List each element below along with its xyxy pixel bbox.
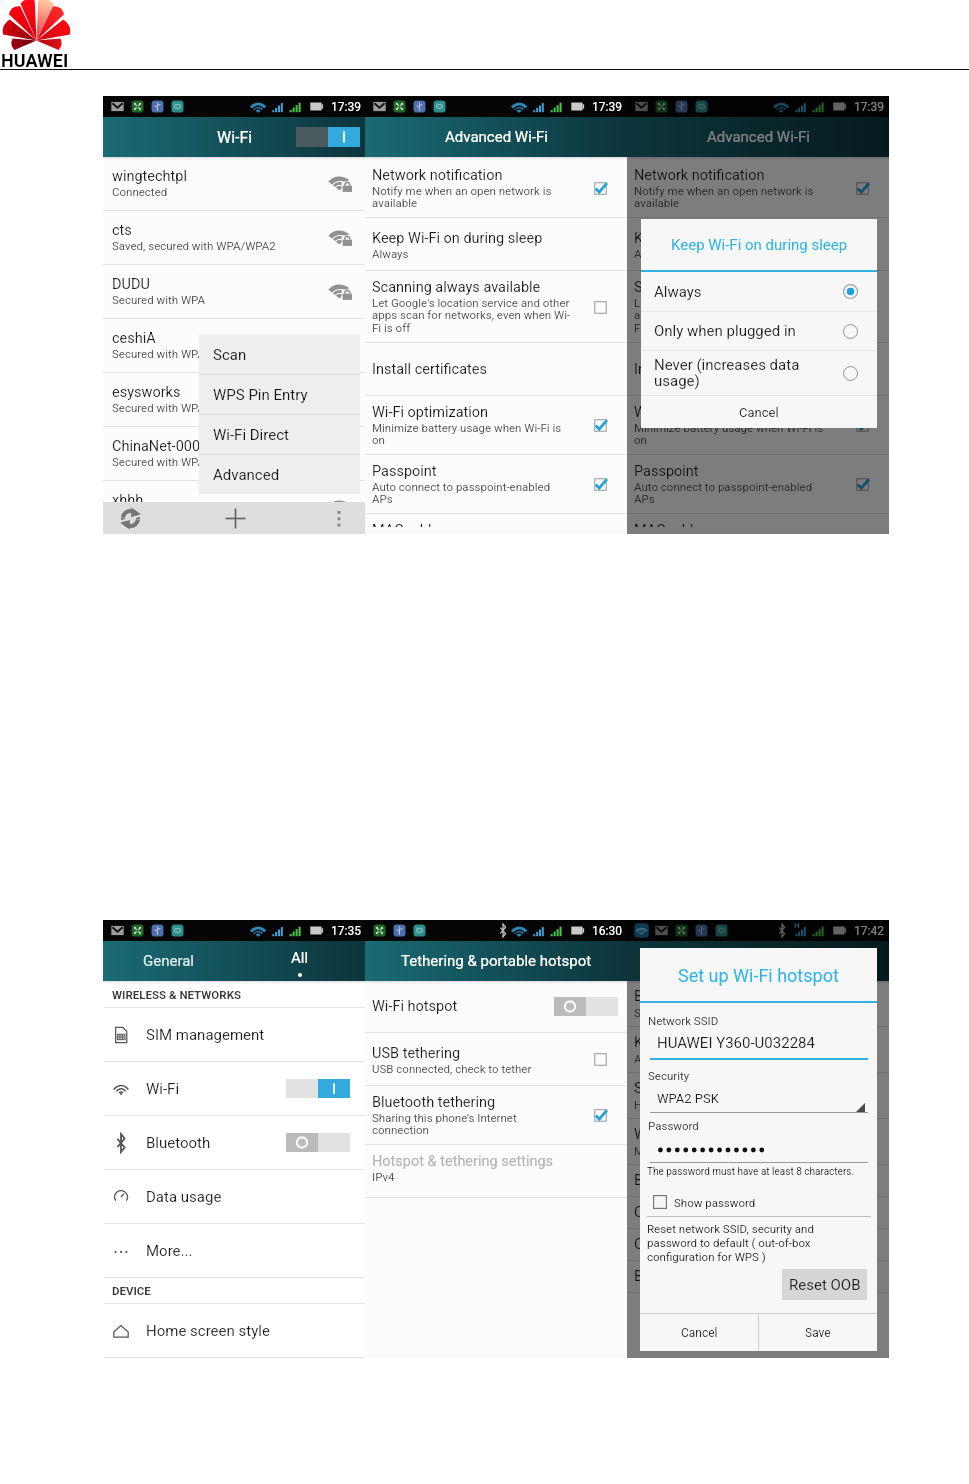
button[interactable]: Keep Wi-Fi on during sleep <box>365 218 627 270</box>
staticText: cts <box>112 222 132 239</box>
button[interactable]: Bluetooth <box>103 1116 366 1169</box>
button[interactable]: esysworks <box>103 373 366 426</box>
staticText: General <box>143 952 195 970</box>
button[interactable]: Passpoint <box>365 455 627 513</box>
staticText: HUAWEI <box>1 50 69 71</box>
staticText: MAC address <box>634 522 721 527</box>
button[interactable]: Network notification <box>627 159 889 217</box>
staticText: Cancel <box>739 405 779 420</box>
button[interactable]: Advanced <box>199 455 360 494</box>
button[interactable]: xhhh <box>103 481 366 534</box>
button[interactable]: Unchecked <box>856 301 869 314</box>
button[interactable]: More options <box>318 502 360 534</box>
staticText: Passpoint <box>372 463 437 480</box>
staticText: xhhh <box>112 492 144 509</box>
button[interactable]: Switch off <box>554 997 618 1016</box>
button[interactable]: Not selected <box>843 366 858 381</box>
button[interactable]: Unchecked <box>594 1053 607 1066</box>
button[interactable]: Selected <box>843 284 858 299</box>
staticText: 17:39 <box>854 100 884 114</box>
button[interactable]: Checked <box>594 182 607 195</box>
staticText: Advanced Wi-Fi <box>445 128 548 146</box>
button[interactable]: Switch on <box>296 127 360 147</box>
button[interactable]: MAC address <box>365 514 627 534</box>
button[interactable]: Never (increases data usage) <box>641 351 877 395</box>
button[interactable]: WPS Pin Entry <box>199 375 360 414</box>
staticText: Wi-Fi <box>217 128 253 147</box>
button[interactable]: Home screen style <box>103 1304 366 1357</box>
button[interactable]: Wi-Fi <box>103 1062 366 1115</box>
button[interactable]: cts <box>103 211 366 264</box>
button[interactable]: Wi-Fi optimization <box>365 396 627 454</box>
staticText: Bluetooth <box>634 1172 697 1189</box>
staticText: Let Google's location service and other … <box>634 296 833 335</box>
button[interactable]: Switch on <box>286 1079 350 1098</box>
button[interactable]: Checked <box>594 478 607 491</box>
button[interactable]: Keep Wi-Fi on during sleep <box>627 218 889 270</box>
staticText: Secured with WPA <box>112 509 206 522</box>
staticText: 17:35 <box>331 924 361 938</box>
button[interactable]: Switch off <box>286 1133 350 1152</box>
staticText: esysworks <box>112 384 181 401</box>
staticText: Scanning always available <box>372 279 541 296</box>
button[interactable]: DUDU <box>103 265 366 318</box>
button[interactable]: Checked <box>594 419 607 432</box>
staticText: Minimize battery usage when Wi-Fi is on <box>372 421 571 447</box>
staticText: ChinaNet-000 <box>112 438 201 455</box>
button[interactable]: Passpoint <box>627 455 889 513</box>
button[interactable]: Always <box>641 272 877 311</box>
button[interactable]: Checked <box>856 182 869 195</box>
staticText: Sharing this phone's Internet <box>634 1006 779 1019</box>
button[interactable]: Data usage <box>103 1170 366 1223</box>
staticText: Tethering & portable hotspot <box>401 952 592 970</box>
button[interactable]: Refresh <box>108 502 152 534</box>
button[interactable]: Unchecked <box>594 301 607 314</box>
staticText: Always <box>654 283 843 301</box>
staticText: Bluetooth tethering <box>372 1094 496 1111</box>
staticText: Minimize battery usage when Wi-Fi is on <box>634 421 833 447</box>
staticText: ceshiA <box>112 330 156 347</box>
button[interactable]: Bluetooth tethering <box>365 1086 627 1144</box>
button[interactable]: Scanning always available <box>365 271 627 342</box>
button[interactable]: wingtechtpl <box>103 157 366 210</box>
button[interactable]: Scanning always available <box>627 271 889 342</box>
button[interactable]: Wi-Fi optimization <box>627 396 889 454</box>
button[interactable]: Checked <box>856 478 869 491</box>
button[interactable]: Wi-Fi Direct <box>199 415 360 454</box>
staticText: Show password <box>674 1196 756 1209</box>
staticText: Wi-Fi optimization <box>634 1126 751 1143</box>
button[interactable]: Install certificates <box>627 343 889 395</box>
staticText: Set up Wi-Fi hotspot <box>678 965 839 986</box>
button[interactable]: Checked <box>594 1109 607 1122</box>
staticText: 17:39 <box>331 100 361 114</box>
staticText: Data usage <box>146 1188 350 1206</box>
button[interactable]: MAC address <box>627 514 889 534</box>
staticText: Auto connect to passpoint-enabled APs <box>634 480 833 506</box>
button[interactable]: Add network <box>213 502 257 534</box>
staticText: Scan <box>213 346 247 364</box>
button[interactable]: Cancel <box>640 1314 758 1351</box>
button[interactable]: Scan <box>199 335 360 374</box>
staticText: Keep Wi-Fi on during sleep <box>372 230 543 247</box>
button[interactable]: ceshiA <box>103 319 366 372</box>
button[interactable]: ChinaNet-000 <box>103 427 366 480</box>
button[interactable]: SIM management <box>103 1008 366 1061</box>
staticText: Secured with WPA (WPS available) <box>112 401 289 414</box>
staticText: 17:42 <box>854 924 884 938</box>
button[interactable]: Install certificates <box>365 343 627 395</box>
button[interactable]: All <box>234 941 366 981</box>
staticText: Keep Wi-Fi on during sleep <box>634 1034 805 1051</box>
button[interactable]: Wi-Fi hotspot <box>365 981 627 1032</box>
button[interactable]: Not selected <box>843 324 858 339</box>
button[interactable]: Only when plugged in <box>641 312 877 350</box>
button[interactable]: USB tethering <box>365 1033 627 1085</box>
button[interactable]: Save <box>759 1314 877 1351</box>
button[interactable]: More... <box>103 1224 366 1277</box>
button[interactable]: Cancel <box>641 396 877 428</box>
staticText: Scanning always available <box>634 1080 803 1097</box>
button[interactable]: Show password <box>647 1191 772 1213</box>
button[interactable]: Checked <box>856 419 869 432</box>
button[interactable]: General <box>103 941 234 981</box>
button[interactable]: Reset OOB <box>782 1269 867 1300</box>
button[interactable]: Network notification <box>365 159 627 217</box>
